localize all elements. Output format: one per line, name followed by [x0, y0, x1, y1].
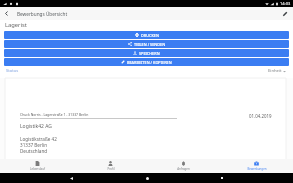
staticText: 01.04.2019: [249, 113, 272, 119]
staticText: Logistik42 AG: [20, 123, 52, 130]
button[interactable]: Recents: [217, 173, 227, 183]
staticText: Chuck Norris - Lagerstraße 1 - 31337 Ber…: [20, 112, 89, 117]
staticText: Anfragen: [177, 167, 190, 171]
staticText: 31337 Berlin: [20, 142, 48, 148]
button[interactable]: Anfragen: [147, 159, 220, 173]
staticText: Bewerbungen: [247, 167, 267, 171]
staticText: BEARBEITEN / KOPIEREN: [127, 60, 172, 65]
button[interactable]: Bewerbungen: [220, 159, 293, 173]
staticText: Profil: [107, 167, 115, 171]
staticText: TEILEN / SENDEN: [134, 42, 166, 47]
button[interactable]: Einheit: [268, 68, 286, 74]
button[interactable]: Profil: [74, 159, 147, 173]
staticText: Lebenslauf: [30, 167, 45, 171]
button[interactable]: Back: [0, 7, 13, 20]
button[interactable]: DRUCKEN: [4, 31, 289, 39]
staticText: Deutschland: [20, 148, 48, 154]
staticText: Logistikstraße 42: [20, 136, 57, 142]
button[interactable]: SPEICHERN: [4, 49, 289, 57]
staticText: DRUCKEN: [141, 33, 159, 38]
staticText: Einheit: [268, 68, 282, 74]
button[interactable]: Home: [142, 173, 152, 183]
staticText: Status: [6, 68, 19, 74]
staticText: Lagerist: [5, 21, 27, 29]
button[interactable]: TEILEN / SENDEN: [4, 40, 289, 48]
button[interactable]: Back: [66, 173, 76, 183]
staticText: 14:03: [280, 1, 291, 6]
staticText: SPEICHERN: [139, 51, 160, 56]
staticText: Bewerbungs Übersicht: [17, 11, 68, 17]
button[interactable]: Lebenslauf: [0, 159, 74, 173]
button[interactable]: BEARBEITEN / KOPIEREN: [4, 58, 289, 66]
button[interactable]: Edit: [278, 7, 291, 20]
